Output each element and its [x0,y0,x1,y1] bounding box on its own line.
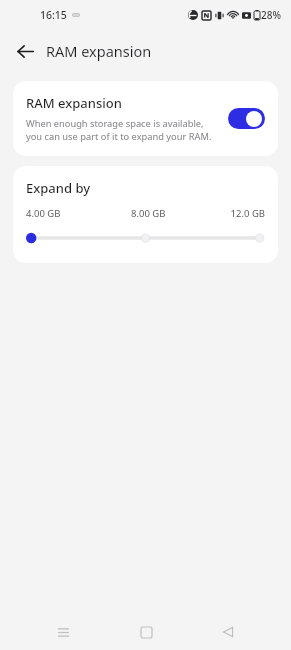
button[interactable]: Expand by slider [26,229,265,247]
button[interactable]: RAM expansion toggle [228,108,265,129]
staticText: RAM expansion [46,41,152,61]
staticText: 4.00 GB [26,207,61,220]
button[interactable]: Back [8,34,42,68]
button[interactable]: Back [208,614,248,650]
staticText: 8.00 GB [131,207,166,220]
staticText: RAM expansion [26,94,122,112]
button[interactable]: RAM expansion [13,81,278,156]
staticText: Expand by [26,179,91,197]
staticText: 12.0 GB [230,207,265,220]
button[interactable]: Home [126,614,166,650]
staticText: When enough storage space is available, … [26,117,218,143]
staticText: 16:15 [40,8,67,22]
staticText: 28% [261,8,281,22]
button[interactable]: Recent apps [43,614,83,650]
